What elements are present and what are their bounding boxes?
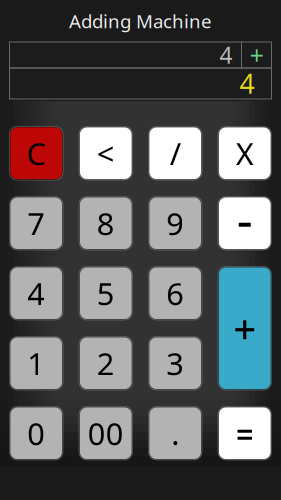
staticText: +	[249, 38, 263, 72]
button[interactable]: 1	[10, 337, 62, 389]
staticText: X	[236, 133, 254, 174]
staticText: 8	[97, 203, 115, 244]
staticText: .	[171, 413, 179, 454]
button[interactable]: 00	[79, 407, 132, 459]
staticText: 5	[97, 273, 115, 314]
staticText: 6	[166, 273, 184, 314]
button[interactable]: 2	[79, 337, 132, 389]
staticText: 1	[27, 343, 45, 384]
staticText: 4	[239, 66, 254, 101]
staticText: 4	[219, 40, 232, 70]
staticText: 7	[27, 203, 45, 244]
staticText: 4	[27, 273, 45, 314]
button[interactable]: Equals	[218, 407, 271, 459]
staticText: C	[27, 133, 46, 174]
staticText: 00	[88, 413, 124, 454]
button[interactable]: 9	[149, 197, 201, 249]
staticText: <	[97, 133, 115, 174]
button[interactable]: 4	[10, 267, 62, 319]
button[interactable]: /	[149, 127, 201, 179]
staticText: 9	[166, 203, 184, 244]
button[interactable]: 0	[10, 407, 62, 459]
staticText: 3	[166, 343, 184, 384]
button[interactable]: .	[149, 407, 201, 459]
staticText: Adding Machine	[69, 9, 212, 33]
button[interactable]: C	[10, 127, 62, 179]
button[interactable]: Plus	[218, 267, 271, 389]
button[interactable]: 7	[10, 197, 62, 249]
button[interactable]: Minus	[218, 197, 271, 249]
button[interactable]: <	[79, 127, 132, 179]
staticText: 2	[97, 343, 115, 384]
button[interactable]: 5	[79, 267, 132, 319]
button[interactable]: 8	[79, 197, 132, 249]
button[interactable]: 6	[149, 267, 201, 319]
staticText: /	[170, 133, 181, 174]
button[interactable]: X	[218, 127, 271, 179]
button[interactable]: 3	[149, 337, 201, 389]
staticText: 0	[27, 413, 45, 454]
